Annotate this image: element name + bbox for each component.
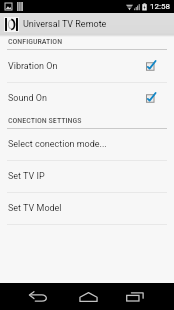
button[interactable]: Vibration On xyxy=(0,50,174,82)
button[interactable]: App icon xyxy=(4,17,19,32)
button[interactable]: Set TV IP xyxy=(0,161,174,192)
staticText: CONECTION SETTINGS xyxy=(8,116,82,125)
button[interactable]: Recent apps xyxy=(113,283,157,310)
button[interactable]: Home xyxy=(63,283,113,310)
staticText: Sound On xyxy=(8,93,47,104)
button[interactable]: Set TV Model xyxy=(0,193,174,224)
staticText: Universal TV Remote xyxy=(23,19,107,30)
button[interactable]: Select conection mode... xyxy=(0,129,174,160)
staticText: Vibration On xyxy=(8,61,58,72)
staticText: 12:58 xyxy=(150,2,170,11)
staticText: CONFIGURATION xyxy=(8,37,63,46)
button[interactable]: Sound On xyxy=(0,83,174,114)
staticText: Select conection mode... xyxy=(8,139,107,150)
button[interactable]: Back xyxy=(13,283,63,310)
staticText: Set TV IP xyxy=(8,171,45,182)
staticText: Set TV Model xyxy=(8,203,62,214)
